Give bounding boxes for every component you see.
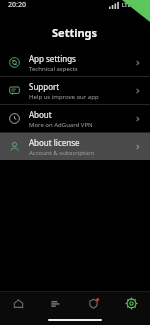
staticText: LTE — [122, 2, 131, 9]
staticText: More on AdGuard VPN — [29, 121, 93, 129]
button[interactable]: Settings — [112, 292, 150, 314]
button[interactable]: About license — [0, 133, 150, 160]
staticText: About license — [29, 137, 80, 148]
button[interactable]: Protection — [74, 292, 112, 314]
staticText: 20:20 — [8, 0, 26, 10]
staticText: Technical aspects — [29, 65, 78, 73]
staticText: Account & subscription — [29, 149, 95, 157]
staticText: Help us improve our app — [29, 93, 99, 101]
button[interactable]: Home — [0, 292, 37, 314]
button[interactable]: About — [0, 105, 150, 132]
staticText: Support — [29, 81, 60, 92]
button[interactable]: Support — [0, 77, 150, 104]
staticText: Settings — [52, 25, 98, 40]
button[interactable]: App settings — [0, 49, 150, 76]
staticText: App settings — [29, 53, 76, 64]
button[interactable]: Statistics — [37, 292, 74, 314]
staticText: About — [29, 109, 52, 120]
